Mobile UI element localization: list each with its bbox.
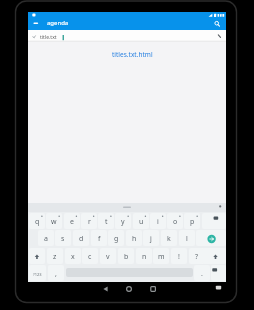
button[interactable] [202, 248, 226, 264]
staticText: ?123 [33, 272, 42, 277]
button[interactable] [28, 30, 226, 42]
staticText: i [157, 217, 159, 227]
staticText: v [106, 252, 110, 262]
staticText: title.txt [40, 34, 57, 41]
staticText: s [61, 234, 65, 244]
button[interactable]: j [143, 230, 159, 246]
button[interactable]: titles.txt.html [112, 50, 153, 59]
button[interactable]: o [167, 213, 183, 229]
button[interactable]: a [38, 230, 54, 246]
button[interactable]: d [73, 230, 89, 246]
button[interactable] [29, 248, 45, 264]
button[interactable]: b [118, 248, 134, 264]
button[interactable]: u [133, 213, 149, 229]
button[interactable] [211, 19, 225, 29]
button[interactable]: i [150, 213, 166, 229]
staticText: ? [195, 252, 199, 262]
staticText: y [121, 217, 125, 227]
staticText: w [51, 217, 57, 227]
button[interactable]: . [194, 265, 210, 281]
button[interactable]: ! [171, 248, 187, 264]
button[interactable]: l [179, 230, 195, 246]
staticText: m [158, 252, 165, 262]
staticText: q [35, 217, 40, 227]
button[interactable] [98, 283, 112, 295]
button[interactable]: g [108, 230, 124, 246]
staticText: k [167, 234, 171, 244]
staticText: d [79, 234, 84, 244]
staticText: c [88, 252, 92, 262]
button[interactable]: m [153, 248, 169, 264]
button[interactable]: v [100, 248, 116, 264]
button[interactable]: y [115, 213, 131, 229]
button[interactable]: ? [189, 248, 205, 264]
button[interactable]: e [64, 213, 80, 229]
button[interactable] [196, 230, 226, 246]
button[interactable] [211, 265, 226, 281]
staticText: a [44, 234, 48, 244]
staticText: j [150, 234, 152, 244]
button[interactable]: x [65, 248, 81, 264]
button[interactable]: z [47, 248, 63, 264]
button[interactable]: t [98, 213, 114, 229]
button[interactable]: c [82, 248, 98, 264]
button[interactable]: ?123 [29, 265, 46, 281]
button[interactable]: , [48, 265, 64, 281]
staticText: agenda [47, 19, 69, 27]
button[interactable] [146, 283, 160, 295]
staticText: r [88, 217, 91, 227]
staticText: b [124, 252, 129, 262]
staticText: x [71, 252, 75, 262]
button[interactable]: n [136, 248, 152, 264]
button[interactable]: h [126, 230, 142, 246]
staticText: ! [178, 252, 180, 262]
button[interactable]: s [55, 230, 71, 246]
staticText: , [55, 269, 57, 279]
staticText: . [201, 269, 203, 279]
staticText: l [186, 234, 188, 244]
staticText: z [53, 252, 57, 262]
button[interactable] [122, 283, 136, 295]
staticText: p [190, 217, 195, 227]
button[interactable]: w [46, 213, 62, 229]
button[interactable]: q [29, 213, 45, 229]
button[interactable]: k [161, 230, 177, 246]
staticText: u [139, 217, 144, 227]
staticText: t [105, 217, 108, 227]
button[interactable]: p [184, 213, 200, 229]
button[interactable] [202, 213, 226, 229]
staticText: o [173, 217, 178, 227]
button[interactable]: f [91, 230, 107, 246]
button[interactable] [214, 31, 224, 41]
staticText: n [142, 252, 147, 262]
staticText: g [114, 234, 119, 244]
staticText: e [70, 217, 74, 227]
button[interactable] [30, 19, 42, 29]
staticText: h [132, 234, 137, 244]
staticText: f [98, 234, 101, 244]
button[interactable]: r [81, 213, 97, 229]
